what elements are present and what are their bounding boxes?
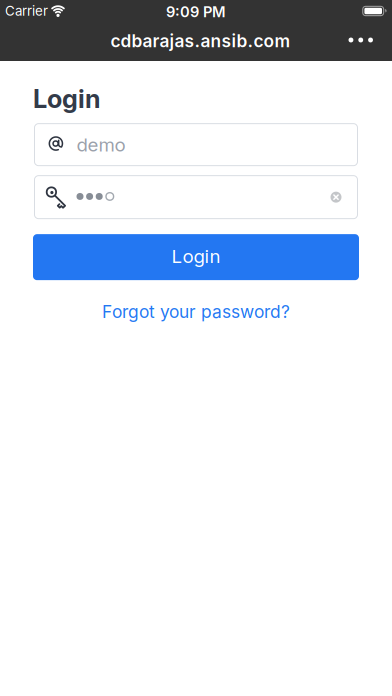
button[interactable]: Login [33,234,359,280]
staticText: Carrier [5,3,48,19]
button[interactable]: Clear text [327,188,345,206]
staticText: demo [76,133,125,156]
staticText: Login [33,83,101,114]
button[interactable]: Password [34,175,358,219]
button[interactable]: Forgot your password? [33,301,359,322]
staticText: 9:09 PM [166,3,226,21]
button[interactable]: More options [338,22,392,61]
button[interactable]: Username [34,123,358,166]
staticText: cdbarajas.ansib.com [110,30,290,51]
staticText: Forgot your password? [102,301,290,322]
staticText: Login [171,245,220,267]
